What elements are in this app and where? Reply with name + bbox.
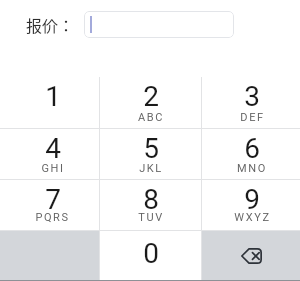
staticText: TUV [138, 211, 164, 224]
staticText: PQRS [35, 211, 70, 224]
button[interactable]: Backspace [202, 231, 300, 281]
staticText: WXYZ [234, 211, 271, 224]
staticText: 9 [244, 183, 260, 216]
staticText: 4 [45, 132, 61, 165]
button[interactable] [84, 11, 234, 38]
staticText: 5 [143, 132, 159, 165]
button[interactable]: Hide keyboard [0, 231, 99, 281]
staticText: 2 [143, 80, 159, 113]
button[interactable]: 3 [202, 77, 300, 128]
staticText: 6 [244, 132, 260, 165]
staticText: MNO [237, 162, 267, 175]
button[interactable]: 9 [202, 180, 300, 230]
staticText: 0 [143, 237, 159, 270]
button[interactable]: 6 [202, 129, 300, 179]
staticText: 报价： [26, 13, 75, 36]
button[interactable]: 2 [100, 77, 201, 128]
button[interactable]: 0 [100, 231, 201, 281]
staticText: ABC [138, 111, 164, 124]
button[interactable]: 5 [100, 129, 201, 179]
button[interactable]: 1 [0, 77, 99, 128]
button[interactable]: 7 [0, 180, 99, 230]
staticText: GHI [41, 162, 65, 175]
staticText: 1 [45, 80, 61, 113]
staticText: JKL [139, 162, 163, 175]
staticText: 8 [143, 183, 159, 216]
staticText: 7 [45, 183, 61, 216]
staticText: 3 [244, 80, 260, 113]
staticText: DEF [240, 111, 265, 124]
button[interactable]: 8 [100, 180, 201, 230]
button[interactable]: 4 [0, 129, 99, 179]
